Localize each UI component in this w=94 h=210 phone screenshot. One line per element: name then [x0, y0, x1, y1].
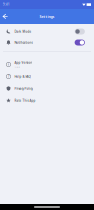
staticText: Privacy Policy: [14, 86, 32, 90]
staticText: Dark Mode: [14, 29, 31, 33]
button[interactable]: i: [0, 58, 94, 70]
button[interactable]: ?: [0, 70, 94, 82]
button[interactable]: Rate This App: [0, 94, 94, 106]
staticText: Notifications: [14, 40, 32, 44]
staticText: App Version: [14, 61, 32, 65]
staticText: i: [8, 63, 9, 66]
staticText: Rate This App: [14, 98, 35, 102]
staticText: Settings: [39, 14, 54, 19]
staticText: 1.0.0: [14, 65, 19, 68]
button[interactable]: Privacy Policy: [0, 82, 94, 94]
button[interactable]: Back: [0, 10, 10, 22]
button[interactable]: Notifications: [0, 37, 94, 48]
staticText: ?: [8, 75, 9, 78]
staticText: 9:41: [3, 3, 10, 6]
staticText: Help & FAQ: [14, 74, 30, 78]
button[interactable]: Dark Mode: [0, 26, 94, 37]
